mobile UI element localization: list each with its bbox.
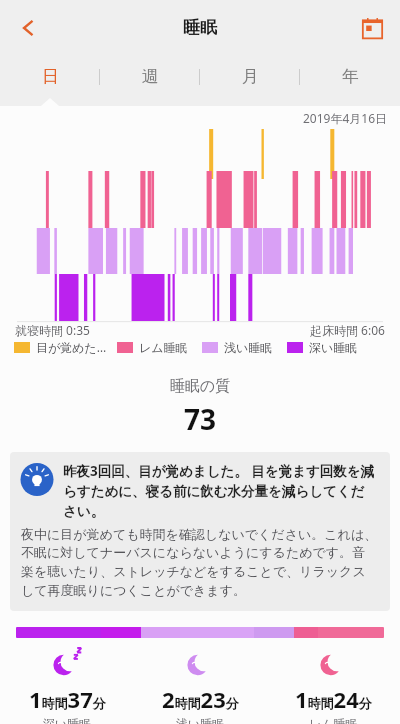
button[interactable]: 月 — [200, 55, 300, 98]
staticText: 深い睡眠 — [43, 716, 92, 724]
button[interactable]: 日 — [0, 55, 100, 98]
button[interactable]: 昨夜3回回、目が覚めました。 目を覚ます回数を減らすために、寝る前に飲む水分量を… — [10, 452, 390, 611]
staticText: 1時間24分 — [295, 684, 372, 714]
staticText: 月 — [242, 66, 259, 87]
staticText: 日 — [42, 66, 59, 87]
button[interactable]: Back — [6, 6, 50, 50]
staticText: 睡眠 — [183, 17, 217, 38]
staticText: 1時間37分 — [29, 684, 106, 714]
staticText: 深い睡眠 — [309, 340, 358, 355]
staticText: 浅い睡眠 — [224, 340, 273, 355]
button[interactable]: 1時間37分 — [0, 646, 134, 724]
button[interactable]: 週 — [100, 55, 200, 98]
staticText: 夜中に目が覚めても時間を確認しないでください。これは、不眠に対してナーバスになら… — [21, 526, 378, 599]
staticText: 週 — [142, 66, 159, 87]
staticText: 2019年4月16日 — [303, 110, 388, 126]
staticText: 睡眠の質 — [0, 377, 400, 396]
staticText: 就寝時間 0:35 — [15, 322, 90, 337]
staticText: 2時間23分 — [162, 684, 239, 714]
staticText: 年 — [342, 66, 359, 87]
staticText: 昨夜3回回、目が覚めました。 目を覚ます回数を減らすために、寝る前に飲む水分量を… — [63, 462, 378, 520]
staticText: レム睡眠 — [139, 340, 188, 355]
staticText: レム睡眠 — [309, 716, 358, 724]
button[interactable]: 1時間24分 — [267, 646, 400, 724]
staticText: 73 — [0, 400, 400, 438]
staticText: 浅い睡眠 — [176, 716, 225, 724]
staticText: 目が覚めた… — [36, 339, 107, 355]
button[interactable]: 年 — [300, 55, 400, 98]
staticText: 起床時間 6:06 — [310, 322, 385, 337]
button[interactable]: 2時間23分 — [134, 646, 267, 724]
button[interactable]: Calendar — [352, 8, 392, 48]
